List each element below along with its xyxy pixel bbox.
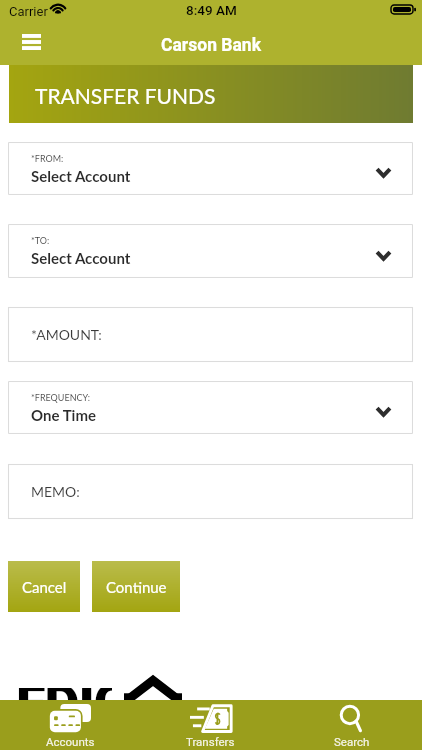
- button[interactable]: Search: [281, 700, 422, 750]
- staticText: One Time: [31, 406, 96, 424]
- staticText: FDIC: [16, 688, 112, 700]
- staticText: Search: [334, 735, 370, 748]
- staticText: 8:49 AM: [186, 2, 237, 18]
- button[interactable]: *FROM:: [8, 142, 413, 195]
- button[interactable]: *AMOUNT:: [8, 307, 413, 362]
- staticText: Continue: [106, 578, 167, 596]
- button[interactable]: Open navigation menu: [14, 25, 48, 59]
- staticText: TRANSFER FUNDS: [35, 83, 216, 108]
- button[interactable]: *TO:: [8, 224, 413, 278]
- staticText: Select Account: [31, 167, 131, 185]
- staticText: Carson Bank: [161, 35, 261, 56]
- button[interactable]: *FREQUENCY:: [8, 381, 413, 434]
- button[interactable]: MEMO:: [8, 464, 413, 519]
- staticText: Transfers: [186, 735, 235, 748]
- button[interactable]: Continue: [92, 561, 180, 612]
- button[interactable]: Cancel: [8, 561, 80, 612]
- staticText: *FREQUENCY:: [31, 392, 91, 403]
- staticText: MEMO:: [31, 483, 80, 500]
- button[interactable]: Accounts: [0, 700, 140, 750]
- staticText: Cancel: [22, 578, 67, 596]
- staticText: *AMOUNT:: [31, 326, 102, 343]
- staticText: *TO:: [31, 235, 50, 246]
- button[interactable]: Transfers: [140, 700, 281, 750]
- staticText: Accounts: [46, 735, 95, 748]
- staticText: *FROM:: [31, 153, 64, 164]
- staticText: Select Account: [31, 249, 131, 267]
- staticText: Carrier: [9, 4, 48, 19]
